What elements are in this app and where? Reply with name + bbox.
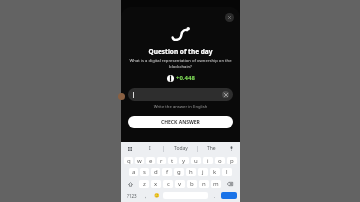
staticText: l [226,168,228,176]
staticText: k [213,168,217,176]
staticText: +0.448 [176,74,195,82]
staticText: b [190,180,194,188]
button[interactable]: d [151,168,160,176]
staticText: g [177,168,181,176]
staticText: h [189,168,193,176]
button[interactable]: g [174,168,184,176]
button[interactable]: Close [225,13,234,22]
staticText: p [230,157,234,164]
staticText: I [149,145,151,152]
staticText: t [171,157,174,164]
button[interactable]: o [215,157,225,164]
staticText: 🙂 [154,193,160,198]
button[interactable]: x [151,180,161,188]
button[interactable]: The [198,142,224,155]
staticText: What is a digital representation of owne… [129,58,232,69]
staticText: v [178,180,182,188]
staticText: w [137,157,142,164]
button[interactable]: Shift [124,180,137,188]
button[interactable]: e [146,157,155,164]
staticText: ?123 [127,193,137,199]
staticText: Write the answer in English [121,104,240,110]
button[interactable]: Enter [221,192,237,199]
button[interactable]: a [129,168,138,176]
button[interactable]: n [199,180,209,188]
staticText: y [182,157,186,164]
button[interactable]: c [163,180,173,188]
button[interactable]: z [139,180,149,188]
button[interactable]: , [141,192,150,199]
staticText: i [207,157,209,164]
button[interactable]: Toolbar [123,142,137,155]
button[interactable]: Clear text [222,91,229,98]
button[interactable]: q [124,157,133,164]
staticText: r [160,157,163,164]
staticText: a [132,168,136,176]
staticText: c [167,180,170,188]
staticText: Today [174,145,188,152]
staticText: d [154,168,158,176]
button[interactable]: l [222,168,232,176]
staticText: x [154,180,158,188]
button[interactable]: p [227,157,237,164]
staticText: z [143,180,146,188]
staticText: q [127,157,131,164]
button[interactable]: f [162,168,172,176]
button[interactable]: j [198,168,208,176]
staticText: j [202,168,204,176]
button[interactable]: Backspace [223,180,237,188]
button[interactable]: CHECK ANSWER [128,116,233,128]
button[interactable]: r [157,157,166,164]
staticText: u [194,157,198,164]
button[interactable]: i [203,157,213,164]
staticText: . [214,193,216,199]
staticText: Question of the day [121,47,240,56]
button[interactable]: . [210,192,219,199]
staticText: CHECK ANSWER [161,119,200,126]
button[interactable]: v [175,180,185,188]
button[interactable]: s [140,168,149,176]
staticText: e [149,157,153,164]
button[interactable]: w [135,157,144,164]
button[interactable]: h [186,168,196,176]
button[interactable]: u [191,157,201,164]
staticText: n [202,180,206,188]
button[interactable]: t [168,157,177,164]
button[interactable]: ?123 [124,192,139,199]
staticText: m [213,180,219,188]
button[interactable]: I [137,142,163,155]
button[interactable]: 🙂 [152,192,161,199]
button[interactable]: Voice input [224,142,238,155]
staticText: s [143,168,146,176]
button[interactable]: y [179,157,189,164]
button[interactable]: m [211,180,221,188]
staticText: o [218,157,222,164]
button[interactable]: b [187,180,197,188]
button[interactable]: Clear text [128,88,233,101]
button[interactable]: Today [164,142,197,155]
button[interactable]: k [210,168,220,176]
staticText: The [207,145,216,152]
staticText: f [166,168,169,176]
staticText: , [145,193,147,199]
